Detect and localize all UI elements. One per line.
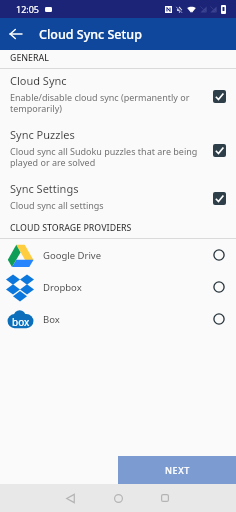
button[interactable]: Cloud Sync [0,69,236,123]
staticText: Cloud sync all settings [10,199,104,211]
staticText: Cloud sync all Sudoku puzzles that are b… [10,145,216,168]
staticText: CLOUD STORAGE PROVIDERS [10,222,132,234]
staticText: Enable/disable cloud sync (permanently o… [10,91,216,114]
staticText: Sync Puzzles [10,127,75,142]
staticText: Box [43,313,213,326]
staticText: 12:05 [16,3,40,15]
button[interactable]: Back [0,18,32,50]
staticText: Dropbox [43,281,213,294]
button[interactable]: Toggle [213,144,226,157]
staticText: NEXT [165,464,190,476]
button[interactable]: Home [106,486,130,510]
button[interactable]: Sync Settings [0,177,236,220]
button[interactable]: Toggle [213,192,226,205]
staticText: GENERAL [10,52,50,64]
button[interactable]: Google Drive [0,239,236,271]
button[interactable]: NEXT [118,456,236,484]
button[interactable]: Toggle [213,90,226,103]
button[interactable]: Back [58,486,82,510]
button[interactable]: Recents [153,486,177,510]
staticText: Google Drive [43,249,213,262]
staticText: Cloud Sync Setup [39,26,142,43]
button[interactable]: Dropbox [0,271,236,303]
staticText: box [12,315,30,329]
staticText: Cloud Sync [10,73,67,88]
button[interactable]: Sync Puzzles [0,123,236,177]
button[interactable]: box [0,303,236,335]
staticText: Sync Settings [10,181,79,196]
